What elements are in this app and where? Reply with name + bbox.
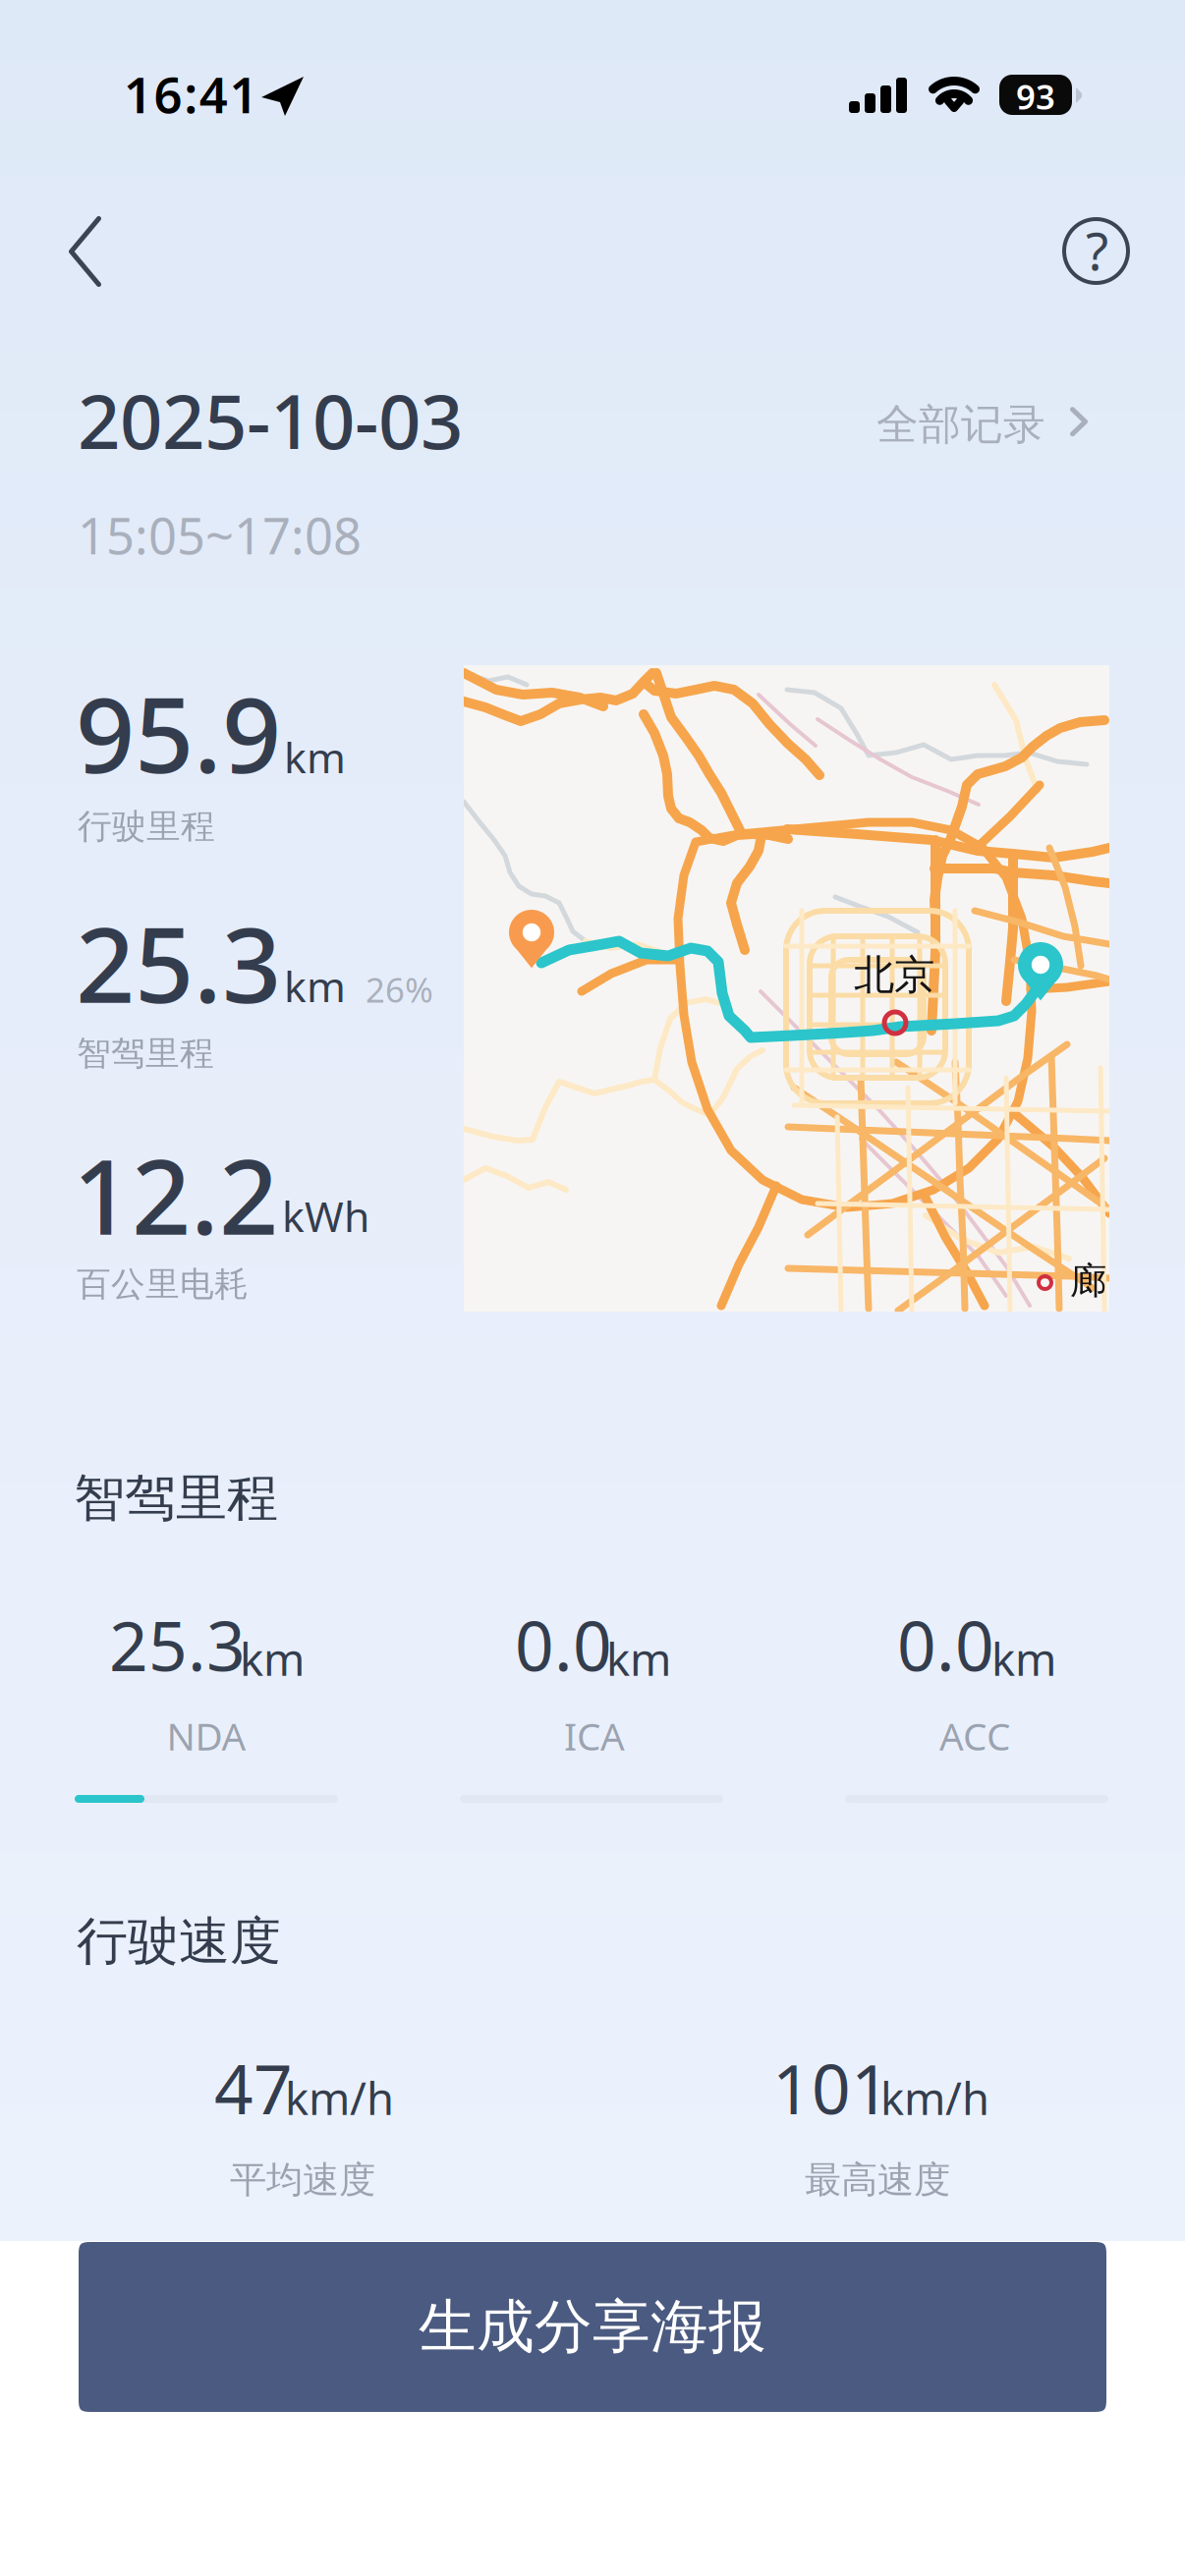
button[interactable]: 生成分享海报 — [79, 2242, 1106, 2412]
staticText: 0.0 — [897, 1599, 994, 1690]
staticText: km — [240, 1629, 305, 1688]
staticText: km — [284, 729, 346, 785]
staticText: 智驾里程 — [77, 1033, 214, 1074]
staticText: 95.9 — [76, 664, 281, 802]
staticText: 15:05~17:08 — [78, 502, 362, 568]
staticText: 生成分享海报 — [419, 2292, 766, 2362]
staticText: km — [284, 958, 346, 1014]
staticText: ICA — [564, 1710, 625, 1761]
button[interactable]: 全部记录 — [859, 381, 1108, 468]
staticText: 16:41 — [124, 61, 258, 127]
staticText: 平均速度 — [230, 2157, 375, 2203]
staticText: 智驾里程 — [74, 1467, 278, 1530]
staticText: 百公里电耗 — [77, 1263, 249, 1305]
staticText: 北京 — [854, 950, 934, 1000]
staticText: 行驶里程 — [78, 806, 215, 847]
staticText: kWh — [282, 1188, 369, 1243]
staticText: 最高速度 — [805, 2157, 950, 2203]
staticText: ACC — [939, 1710, 1010, 1761]
staticText: 25.3 — [76, 894, 281, 1031]
staticText: 25.3 — [109, 1599, 246, 1690]
staticText: 0.0 — [515, 1599, 612, 1690]
staticText: 12.2 — [73, 1126, 278, 1263]
staticText: 2025-10-03 — [78, 370, 463, 470]
staticText: 全部记录 — [876, 399, 1045, 450]
staticText: NDA — [167, 1710, 246, 1761]
staticText: 93 — [1016, 74, 1055, 119]
staticText: ? — [1086, 215, 1108, 285]
button[interactable]: Help — [1048, 203, 1144, 299]
staticText: km — [606, 1629, 671, 1688]
staticText: 廊 — [1070, 1259, 1106, 1304]
button[interactable]: Back — [43, 191, 127, 312]
staticText: 47 — [214, 2043, 293, 2133]
staticText: 行驶速度 — [77, 1910, 281, 1973]
staticText: km/h — [285, 2068, 394, 2127]
staticText: km/h — [880, 2068, 989, 2127]
staticText: km — [991, 1629, 1056, 1688]
staticText: 26% — [366, 967, 433, 1012]
staticText: 101 — [772, 2043, 890, 2133]
